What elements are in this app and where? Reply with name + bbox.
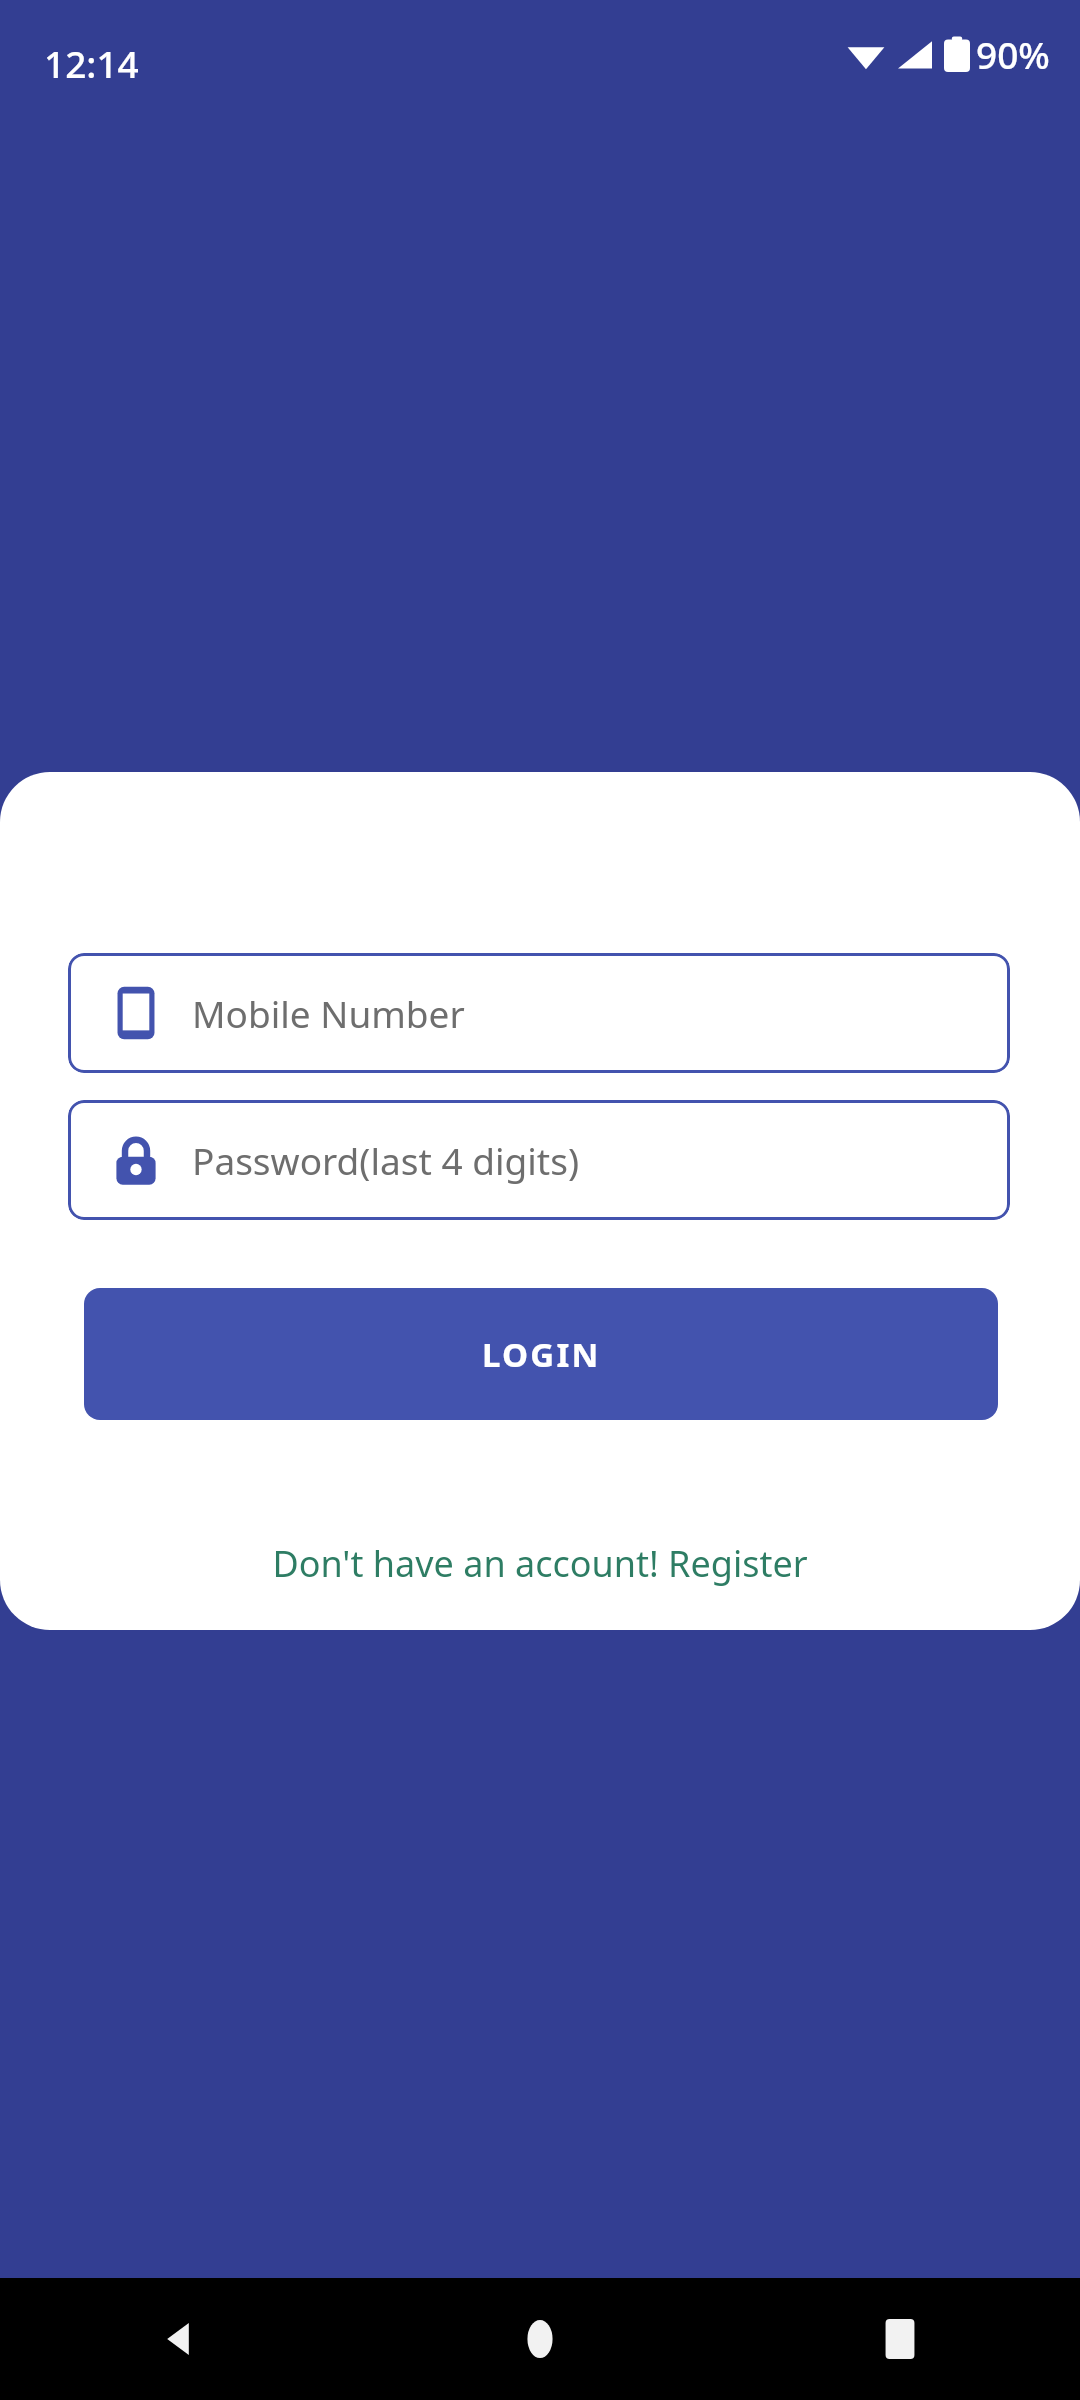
button[interactable]: Mobile Number: [68, 953, 1010, 1073]
button[interactable]: Back: [0, 2278, 360, 2400]
staticText: LOGIN: [482, 1332, 601, 1377]
button[interactable]: Password, last 4 digits: [68, 1100, 1010, 1220]
staticText: Don't have an account! Register: [272, 1539, 808, 1588]
button[interactable]: Recent apps: [720, 2278, 1080, 2400]
staticText: Password(last 4 digits): [192, 1135, 580, 1185]
button[interactable]: LOGIN: [84, 1288, 998, 1420]
staticText: 12:14: [44, 38, 139, 88]
button[interactable]: Home: [360, 2278, 720, 2400]
staticText: 90%: [976, 29, 1050, 79]
staticText: Mobile Number: [192, 988, 465, 1038]
button[interactable]: Don't have an account! Register: [0, 1515, 1080, 1611]
